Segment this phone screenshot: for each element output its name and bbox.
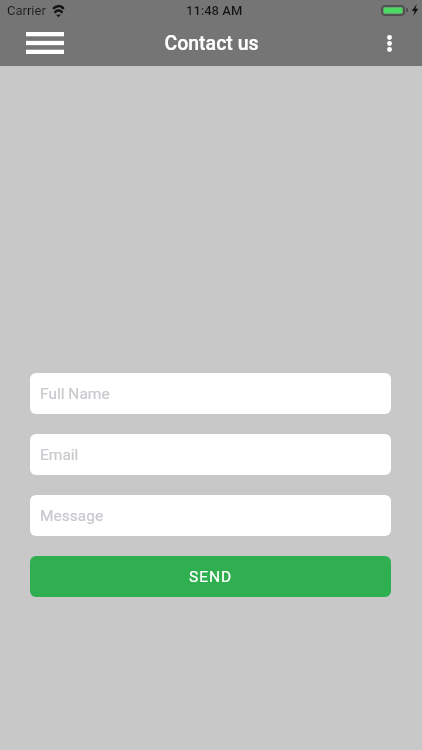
- staticText: Email: [40, 446, 79, 464]
- button[interactable]: Message: [30, 495, 391, 536]
- staticText: Contact us: [164, 32, 259, 55]
- button[interactable]: Open navigation menu: [20, 21, 70, 65]
- staticText: 11:48 AM: [186, 3, 243, 18]
- staticText: SEND: [189, 568, 233, 586]
- button[interactable]: Full Name: [30, 373, 391, 414]
- staticText: Carrier: [7, 3, 46, 18]
- button[interactable]: SEND: [30, 556, 391, 597]
- staticText: Full Name: [40, 385, 110, 403]
- staticText: Message: [40, 507, 104, 525]
- button[interactable]: Email: [30, 434, 391, 475]
- button[interactable]: More options: [367, 21, 411, 65]
